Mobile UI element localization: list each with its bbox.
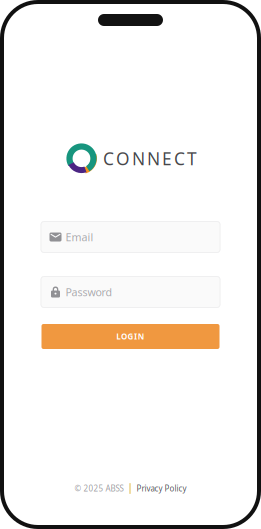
staticText: Email [65, 230, 93, 244]
button[interactable]: LOGIN [41, 324, 219, 349]
staticText: C O N N E C T [103, 147, 197, 170]
staticText: Password [65, 285, 112, 299]
staticText: LOGIN [116, 331, 145, 342]
staticText: © 2025 ABSS [74, 483, 123, 494]
staticText: Privacy Policy [136, 483, 186, 494]
button[interactable]: Privacy Policy [136, 483, 186, 494]
